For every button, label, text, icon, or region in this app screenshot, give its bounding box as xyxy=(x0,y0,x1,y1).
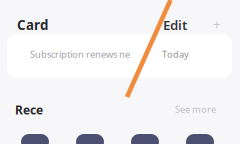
staticText: See more xyxy=(175,103,216,115)
staticText: Rece xyxy=(15,102,43,118)
staticText: Today xyxy=(162,48,189,60)
staticText: Subscription renews ne xyxy=(30,48,130,60)
staticText: + xyxy=(213,15,221,33)
staticText: Edit xyxy=(163,16,187,34)
staticText: Card xyxy=(17,16,48,34)
